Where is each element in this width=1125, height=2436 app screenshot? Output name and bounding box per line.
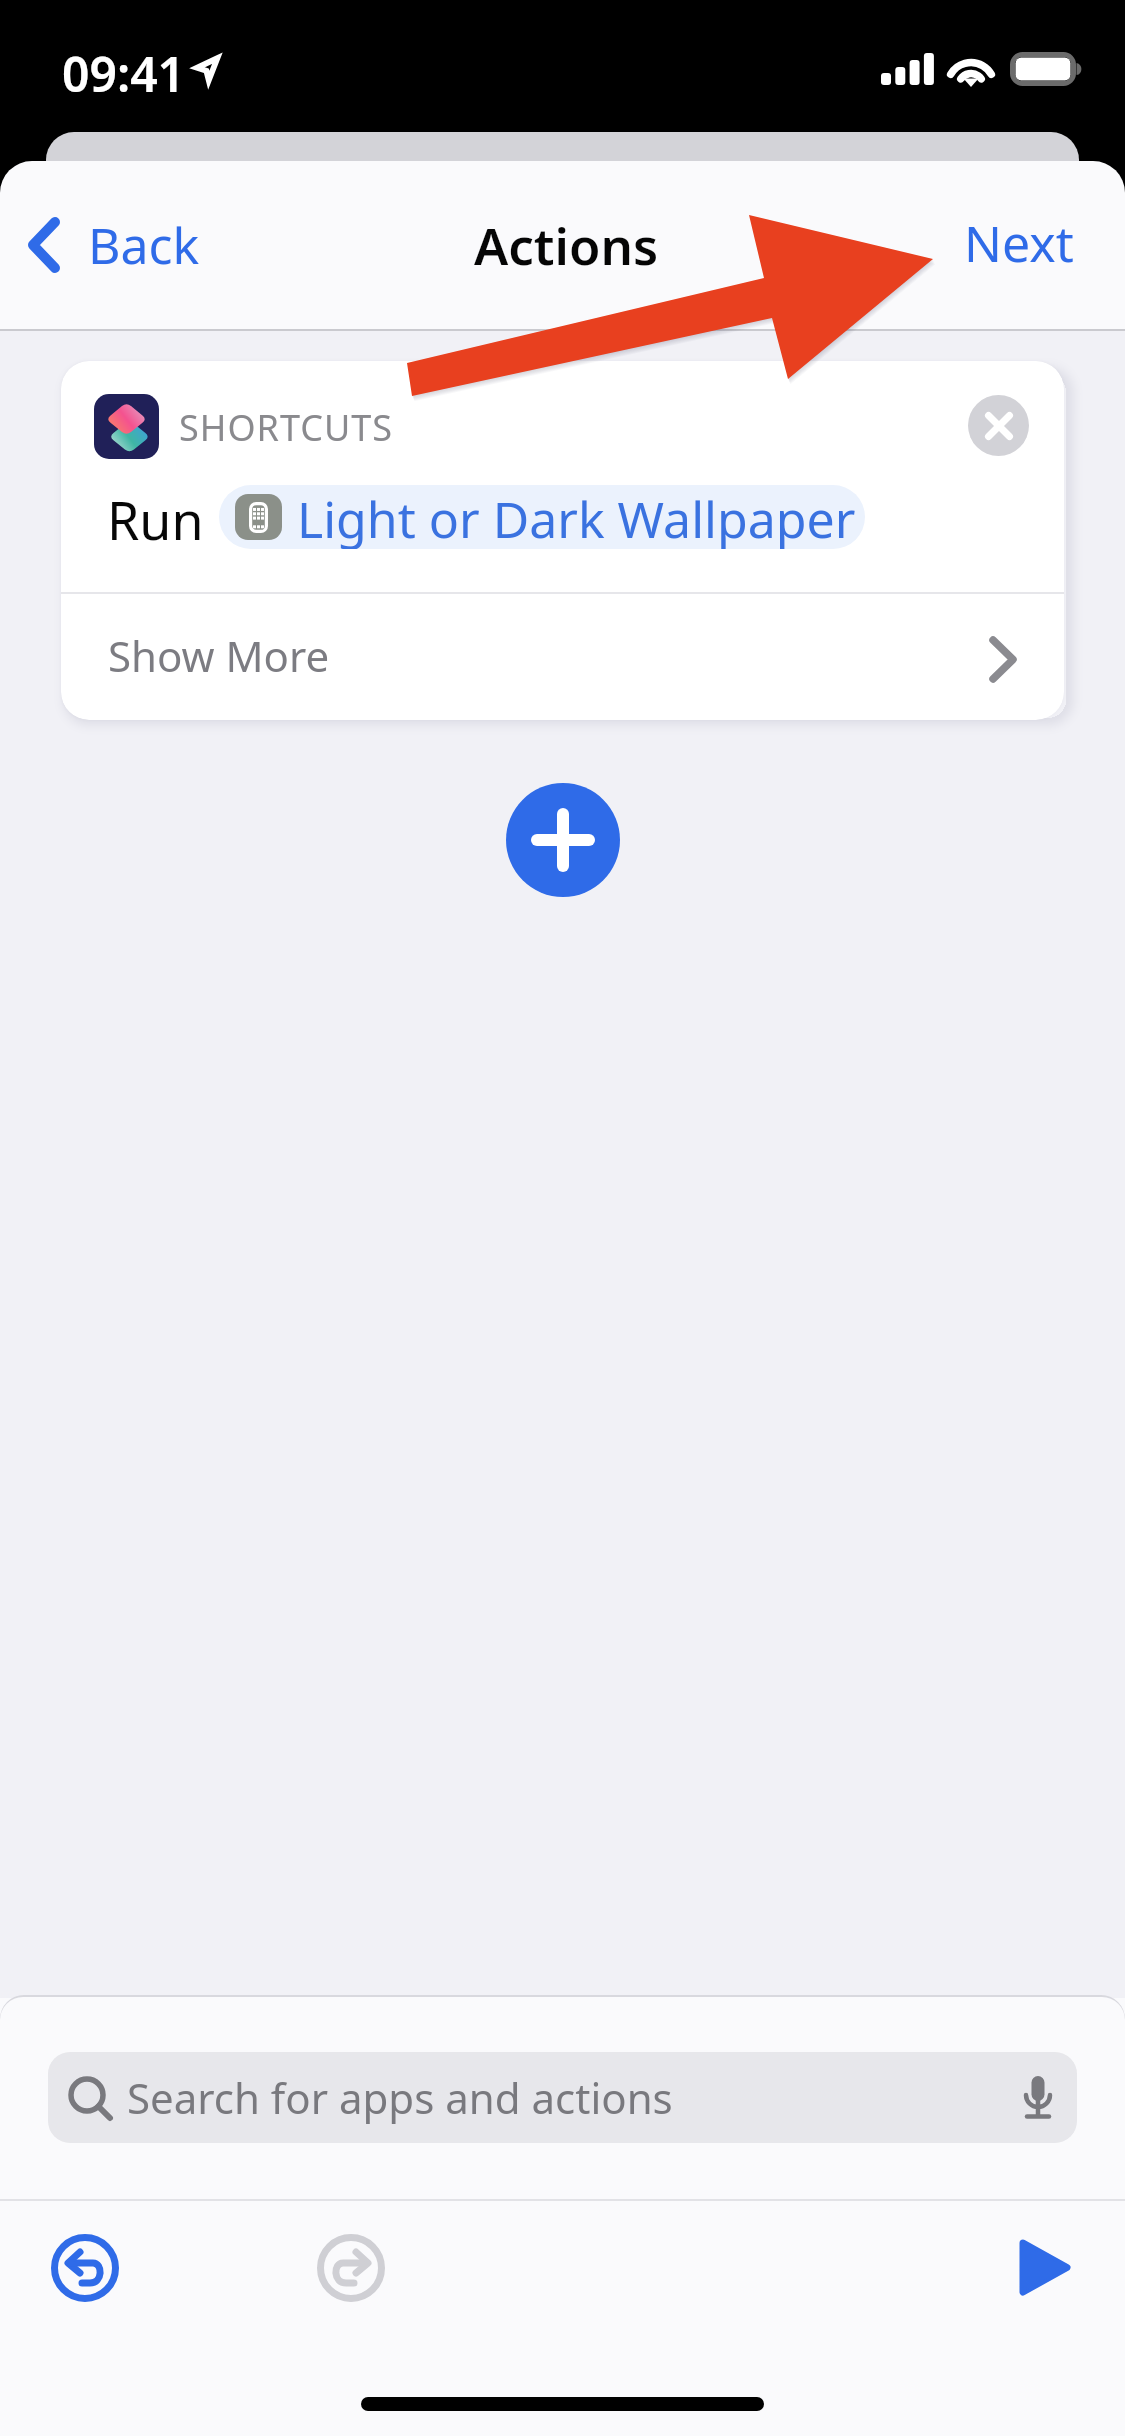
button[interactable]: Remove action	[968, 395, 1029, 456]
button[interactable]: Run shortcut	[1005, 2230, 1085, 2306]
button[interactable]: Next	[946, 193, 1092, 293]
staticText: Run	[107, 484, 204, 555]
staticText: 09:41	[62, 41, 186, 106]
staticText: Show More	[108, 627, 330, 684]
staticText: SHORTCUTS	[179, 403, 394, 452]
staticText: Search for apps and actions	[127, 2069, 673, 2126]
button[interactable]: Light or Dark Wallpaper	[219, 485, 865, 549]
staticText: Back	[88, 211, 200, 279]
staticText: Light or Dark Wallpaper	[297, 485, 856, 549]
button[interactable]: Search for apps and actions	[48, 2052, 1077, 2143]
staticText: Actions	[474, 210, 659, 279]
staticText: Next	[964, 209, 1074, 277]
button[interactable]: Show More	[61, 593, 1064, 720]
button[interactable]: Add action	[506, 783, 620, 897]
button[interactable]: Undo	[51, 2234, 119, 2302]
button[interactable]: Redo	[317, 2234, 385, 2302]
button[interactable]: Back	[14, 195, 218, 295]
